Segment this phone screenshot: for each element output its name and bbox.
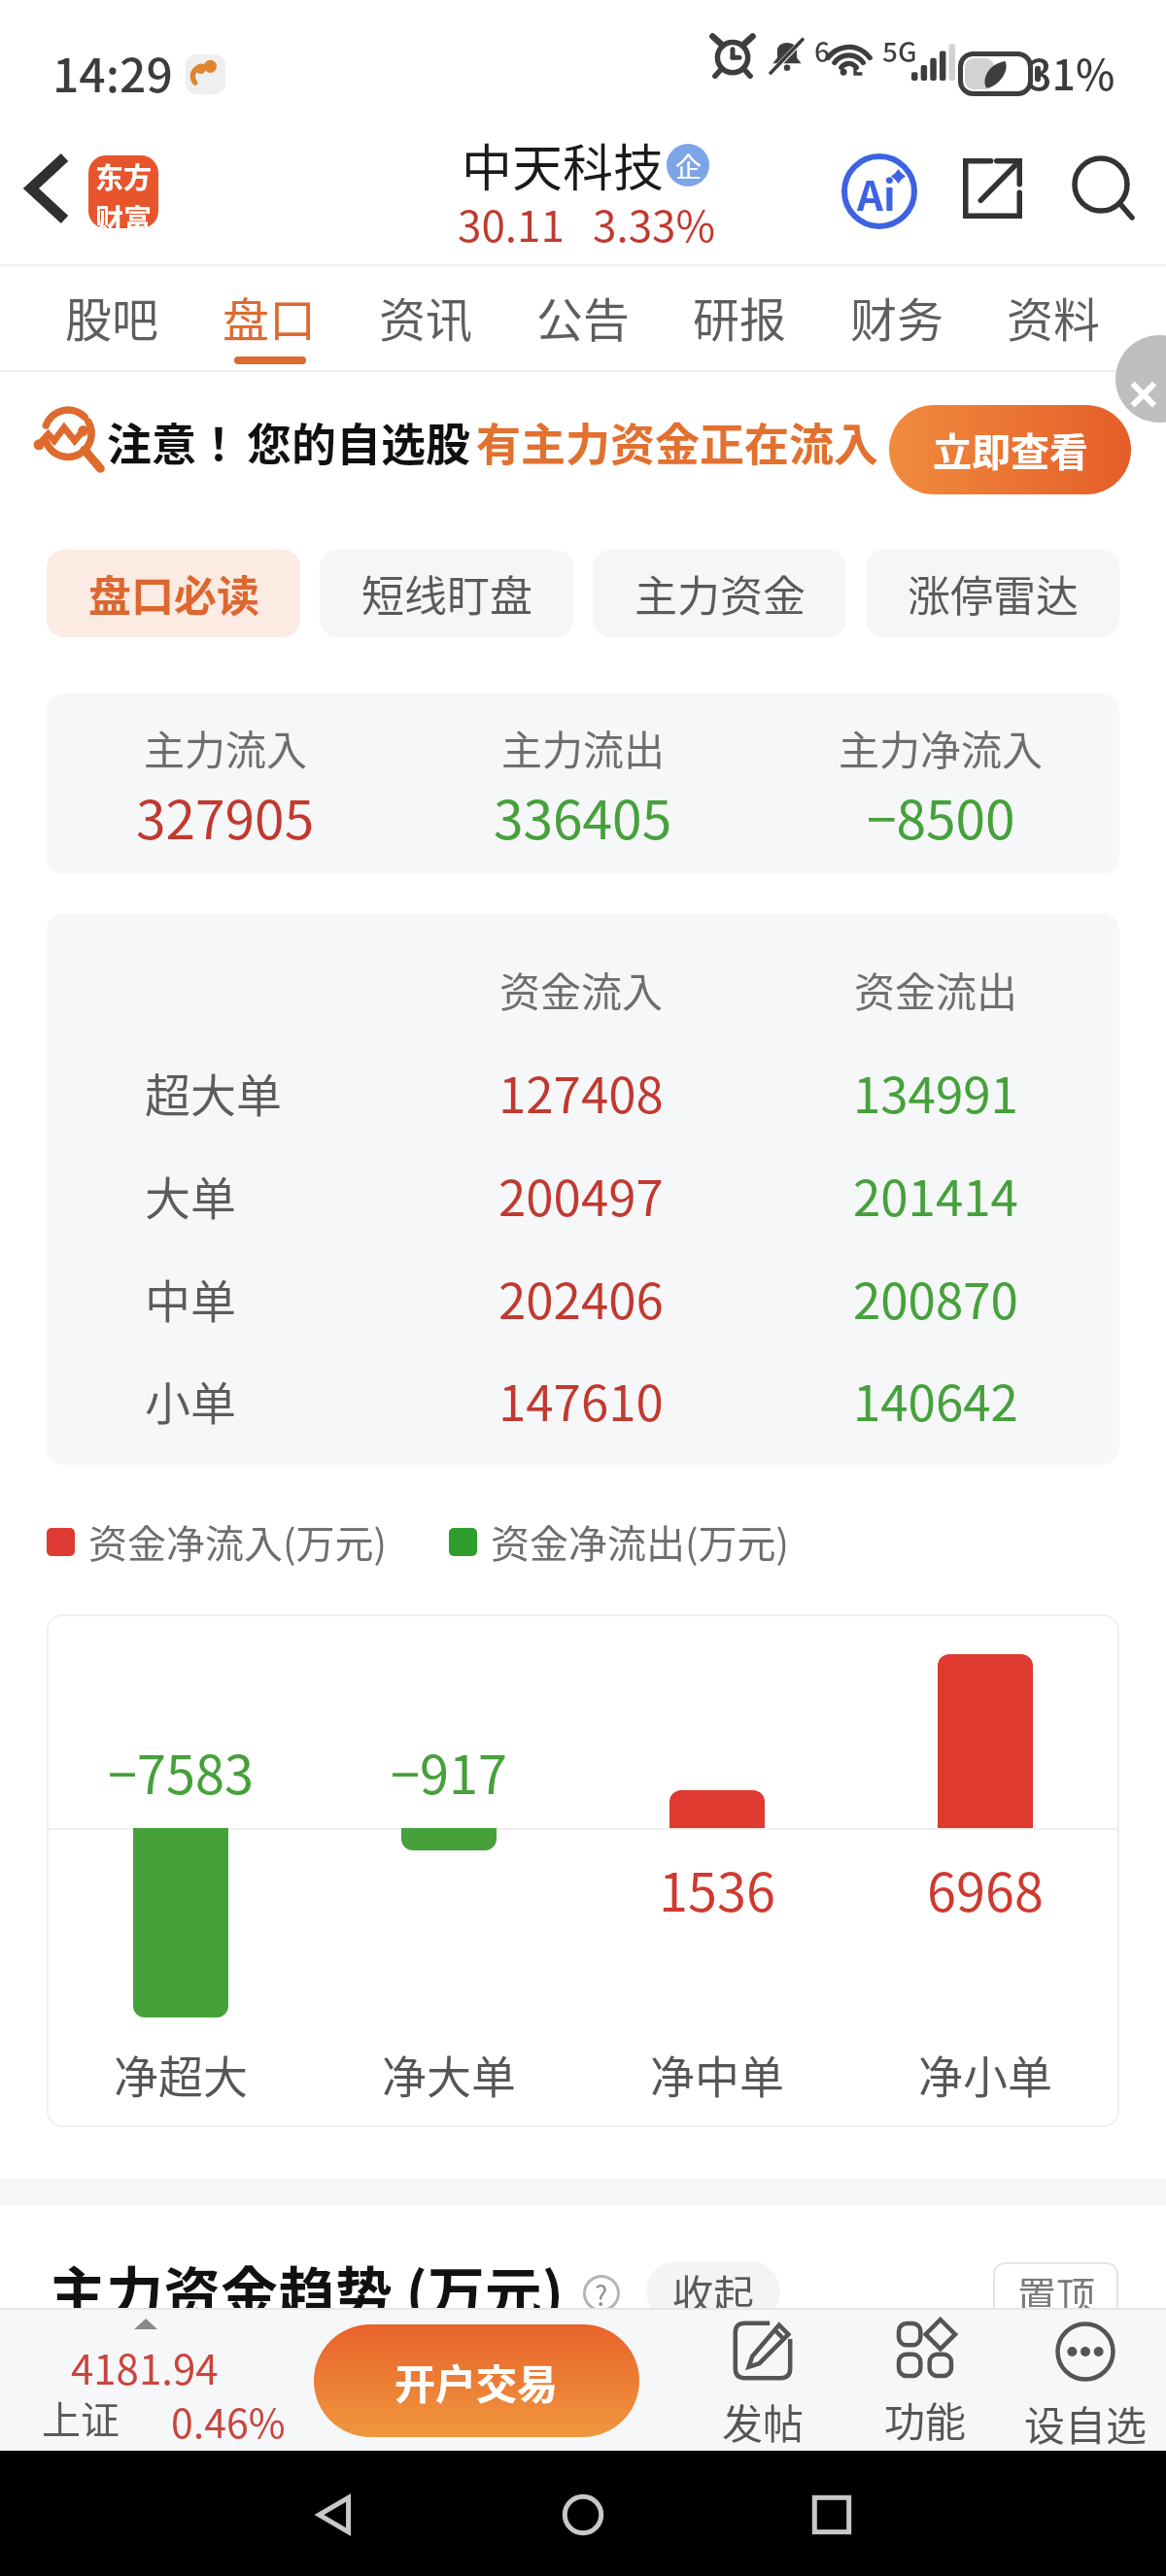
button[interactable]: 设自选 [1012, 2312, 1158, 2451]
staticText: 盘口必读 [88, 562, 259, 625]
staticText: 功能 [884, 2390, 967, 2449]
staticText: 涨停雷达 [908, 562, 1079, 625]
staticText: 企 [675, 147, 702, 185]
staticText: 资讯 [379, 283, 473, 351]
staticText: 财务 [850, 283, 944, 351]
staticText: −917 [391, 1733, 507, 1809]
staticText: 资料 [1007, 283, 1101, 351]
staticText: 开户交易 [394, 2352, 559, 2411]
staticText: −7583 [108, 1733, 254, 1809]
button[interactable]: 研报 [689, 264, 791, 356]
staticText: 14:29 [52, 38, 173, 106]
staticText: 主力流入 [144, 718, 308, 777]
staticText: 31% [1028, 42, 1115, 102]
staticText: 立即查看 [933, 422, 1088, 478]
staticText: 30.11 [458, 192, 565, 254]
staticText: 资金净流入(万元) [88, 1513, 388, 1570]
staticText: 主力净流入 [839, 718, 1044, 777]
staticText: 设自选 [1024, 2393, 1148, 2451]
staticText: 6 [814, 31, 830, 71]
staticText: 资金流入 [499, 960, 664, 1019]
staticText: 336405 [494, 777, 672, 855]
staticText: 200497 [498, 1159, 664, 1231]
button[interactable]: AI [832, 144, 927, 239]
staticText: 140642 [853, 1364, 1018, 1436]
staticText: 中单 [145, 1265, 236, 1331]
staticText: 净超大 [114, 2042, 248, 2107]
staticText: 大单 [145, 1162, 236, 1228]
staticText: 202406 [498, 1262, 664, 1334]
staticText: 净小单 [918, 2042, 1052, 2107]
button[interactable]: 盘口 [219, 264, 321, 364]
staticText: 盘口 [223, 283, 317, 351]
staticText: 上证 [42, 2390, 120, 2446]
staticText: 0.46% [171, 2391, 286, 2449]
button[interactable]: 涨停雷达 [866, 550, 1119, 637]
button[interactable]: Share [953, 150, 1031, 227]
staticText: 6968 [927, 1850, 1044, 1926]
button[interactable]: 短线盯盘 [320, 550, 573, 637]
staticText: 3.33% [593, 192, 716, 254]
staticText: 147610 [498, 1364, 664, 1436]
staticText: ? [595, 2275, 608, 2312]
staticText: 资金流出 [854, 960, 1018, 1019]
button[interactable]: Close [1115, 335, 1166, 423]
staticText: −8500 [867, 777, 1015, 855]
staticText: 5G [882, 31, 917, 71]
staticText: 股吧 [65, 283, 159, 351]
button[interactable]: 资讯 [375, 264, 477, 356]
staticText: 127408 [498, 1056, 664, 1128]
staticText: 主力资金趋势 (万元) [49, 2249, 564, 2331]
staticText: 1536 [659, 1850, 775, 1926]
staticText: 200870 [853, 1262, 1018, 1334]
staticText: 134991 [853, 1056, 1018, 1128]
staticText: 主力流出 [501, 718, 666, 777]
button[interactable]: 主力资金 [593, 550, 846, 637]
staticText: 注意！ [107, 409, 241, 474]
staticText: 4181.94 [71, 2337, 219, 2396]
staticText: 收起 [672, 2262, 755, 2322]
button[interactable]: 财务 [846, 264, 948, 356]
staticText: 公告 [536, 283, 631, 351]
button[interactable]: 功能 [852, 2312, 998, 2451]
button[interactable]: 发帖 [690, 2312, 836, 2451]
staticText: 研报 [693, 283, 787, 351]
staticText: 东方 [95, 155, 153, 196]
button[interactable]: 盘口必读 [47, 550, 300, 637]
button[interactable]: Help [583, 2275, 620, 2312]
staticText: 财富 [95, 197, 153, 228]
button[interactable]: 立即查看 [889, 405, 1131, 494]
staticText: 置顶 [1017, 2265, 1095, 2322]
button[interactable]: 置顶 [993, 2262, 1118, 2324]
button[interactable]: 资料 [1003, 264, 1105, 356]
button[interactable]: 收起 [646, 2261, 780, 2322]
staticText: 有主力资金正在流入 [476, 409, 878, 474]
button[interactable]: 股吧 [61, 264, 163, 356]
button[interactable]: Search [1064, 150, 1142, 227]
button[interactable]: 开户交易 [314, 2324, 639, 2437]
button[interactable]: Back [6, 149, 85, 227]
staticText: 短线盯盘 [361, 562, 532, 625]
button[interactable]: 东方财富 [88, 155, 158, 228]
staticText: 发帖 [722, 2391, 805, 2451]
staticText: 小单 [145, 1367, 236, 1433]
staticText: 327905 [136, 777, 315, 855]
button[interactable]: 公告 [532, 264, 634, 356]
staticText: 净大单 [382, 2042, 516, 2107]
staticText: 中天科技 [462, 128, 665, 201]
staticText: 您的自选股 [247, 409, 470, 474]
staticText: 超大单 [145, 1059, 282, 1125]
staticText: 净中单 [650, 2042, 784, 2107]
staticText: 资金净流出(万元) [491, 1513, 790, 1570]
staticText: Ai [857, 163, 896, 222]
staticText: 主力资金 [634, 562, 806, 625]
staticText: 201414 [853, 1159, 1018, 1231]
